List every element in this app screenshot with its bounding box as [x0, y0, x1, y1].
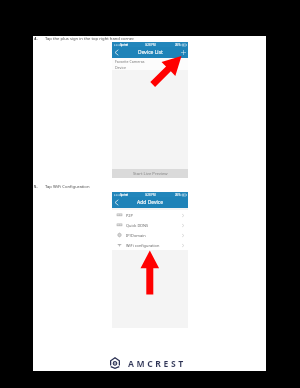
staticText: AMCREST [128, 358, 186, 370]
button[interactable]: Back [112, 47, 121, 58]
staticText: 26% [175, 43, 181, 47]
staticText: 4. [34, 36, 38, 42]
staticText: Favorite Cameras [115, 59, 145, 64]
staticText: Tap WiFi Configuration [45, 184, 90, 190]
staticText: IP/Domain [126, 233, 146, 238]
button[interactable]: Device [112, 64, 188, 70]
staticText: 3:28 PM [145, 43, 156, 47]
button[interactable]: Quick DDNS [112, 220, 188, 230]
staticText: Add Device [137, 199, 164, 206]
staticText: Quick DDNS [126, 223, 149, 228]
button[interactable]: Favorite Cameras [112, 58, 188, 64]
staticText: P2P [126, 213, 133, 218]
staticText: Sprint [120, 193, 128, 197]
staticText: Start Live Preview [133, 171, 168, 177]
staticText: Device List [138, 49, 163, 56]
staticText: Device [115, 65, 127, 70]
staticText: Sprint [120, 43, 128, 47]
button[interactable]: P2P [112, 210, 188, 220]
button[interactable]: Add device [179, 47, 188, 58]
staticText: Tap the plus sign in the top right hand … [45, 36, 135, 42]
staticText: WiFi configuration [126, 243, 160, 248]
staticText: 5. [34, 184, 38, 190]
button[interactable]: WiFi configuration [112, 240, 188, 250]
staticText: 26% [175, 193, 181, 197]
staticText: 3:28 PM [145, 193, 156, 197]
button[interactable]: IP/Domain [112, 230, 188, 240]
button[interactable]: Back [112, 197, 121, 208]
